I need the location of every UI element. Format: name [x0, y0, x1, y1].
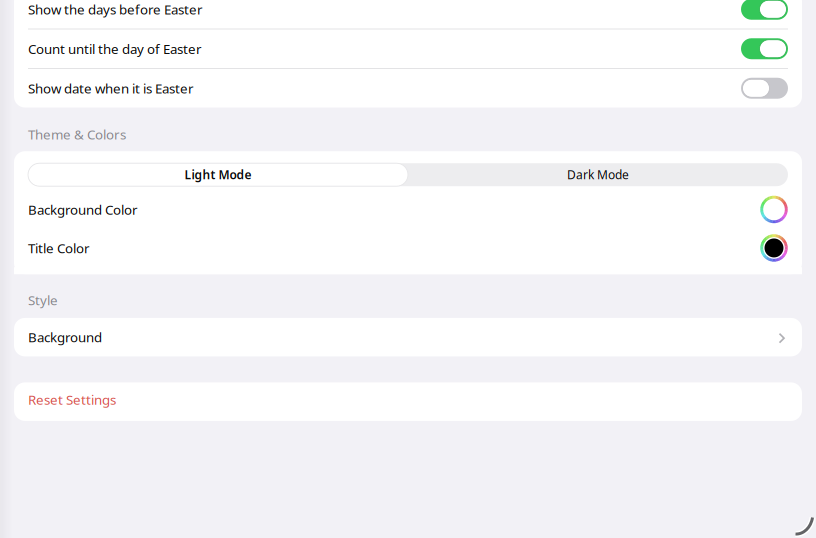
button[interactable]: Show date when it is Easter [14, 69, 802, 107]
staticText: Background [28, 328, 102, 346]
button[interactable]: Count until the day of Easter [14, 29, 802, 68]
staticText: Title Color [28, 239, 90, 257]
staticText: Theme & Colors [28, 125, 126, 143]
staticText: Light Mode [184, 167, 251, 183]
staticText: Show date when it is Easter [28, 79, 194, 97]
staticText: Count until the day of Easter [28, 40, 202, 58]
button[interactable]: Title Color [14, 229, 802, 267]
button[interactable]: Background [14, 318, 802, 356]
button[interactable]: Show the days before Easter [14, 0, 802, 28]
button[interactable]: Reset Settings [0, 382, 816, 421]
staticText: Show the days before Easter [28, 0, 203, 18]
button[interactable]: Light Mode [28, 163, 408, 186]
staticText: Background Color [28, 201, 138, 218]
staticText: Reset Settings [28, 391, 116, 408]
staticText: Style [28, 291, 58, 309]
button[interactable]: Background Color [14, 190, 802, 229]
staticText: Dark Mode [567, 167, 629, 183]
button[interactable]: Dark Mode [408, 163, 788, 186]
